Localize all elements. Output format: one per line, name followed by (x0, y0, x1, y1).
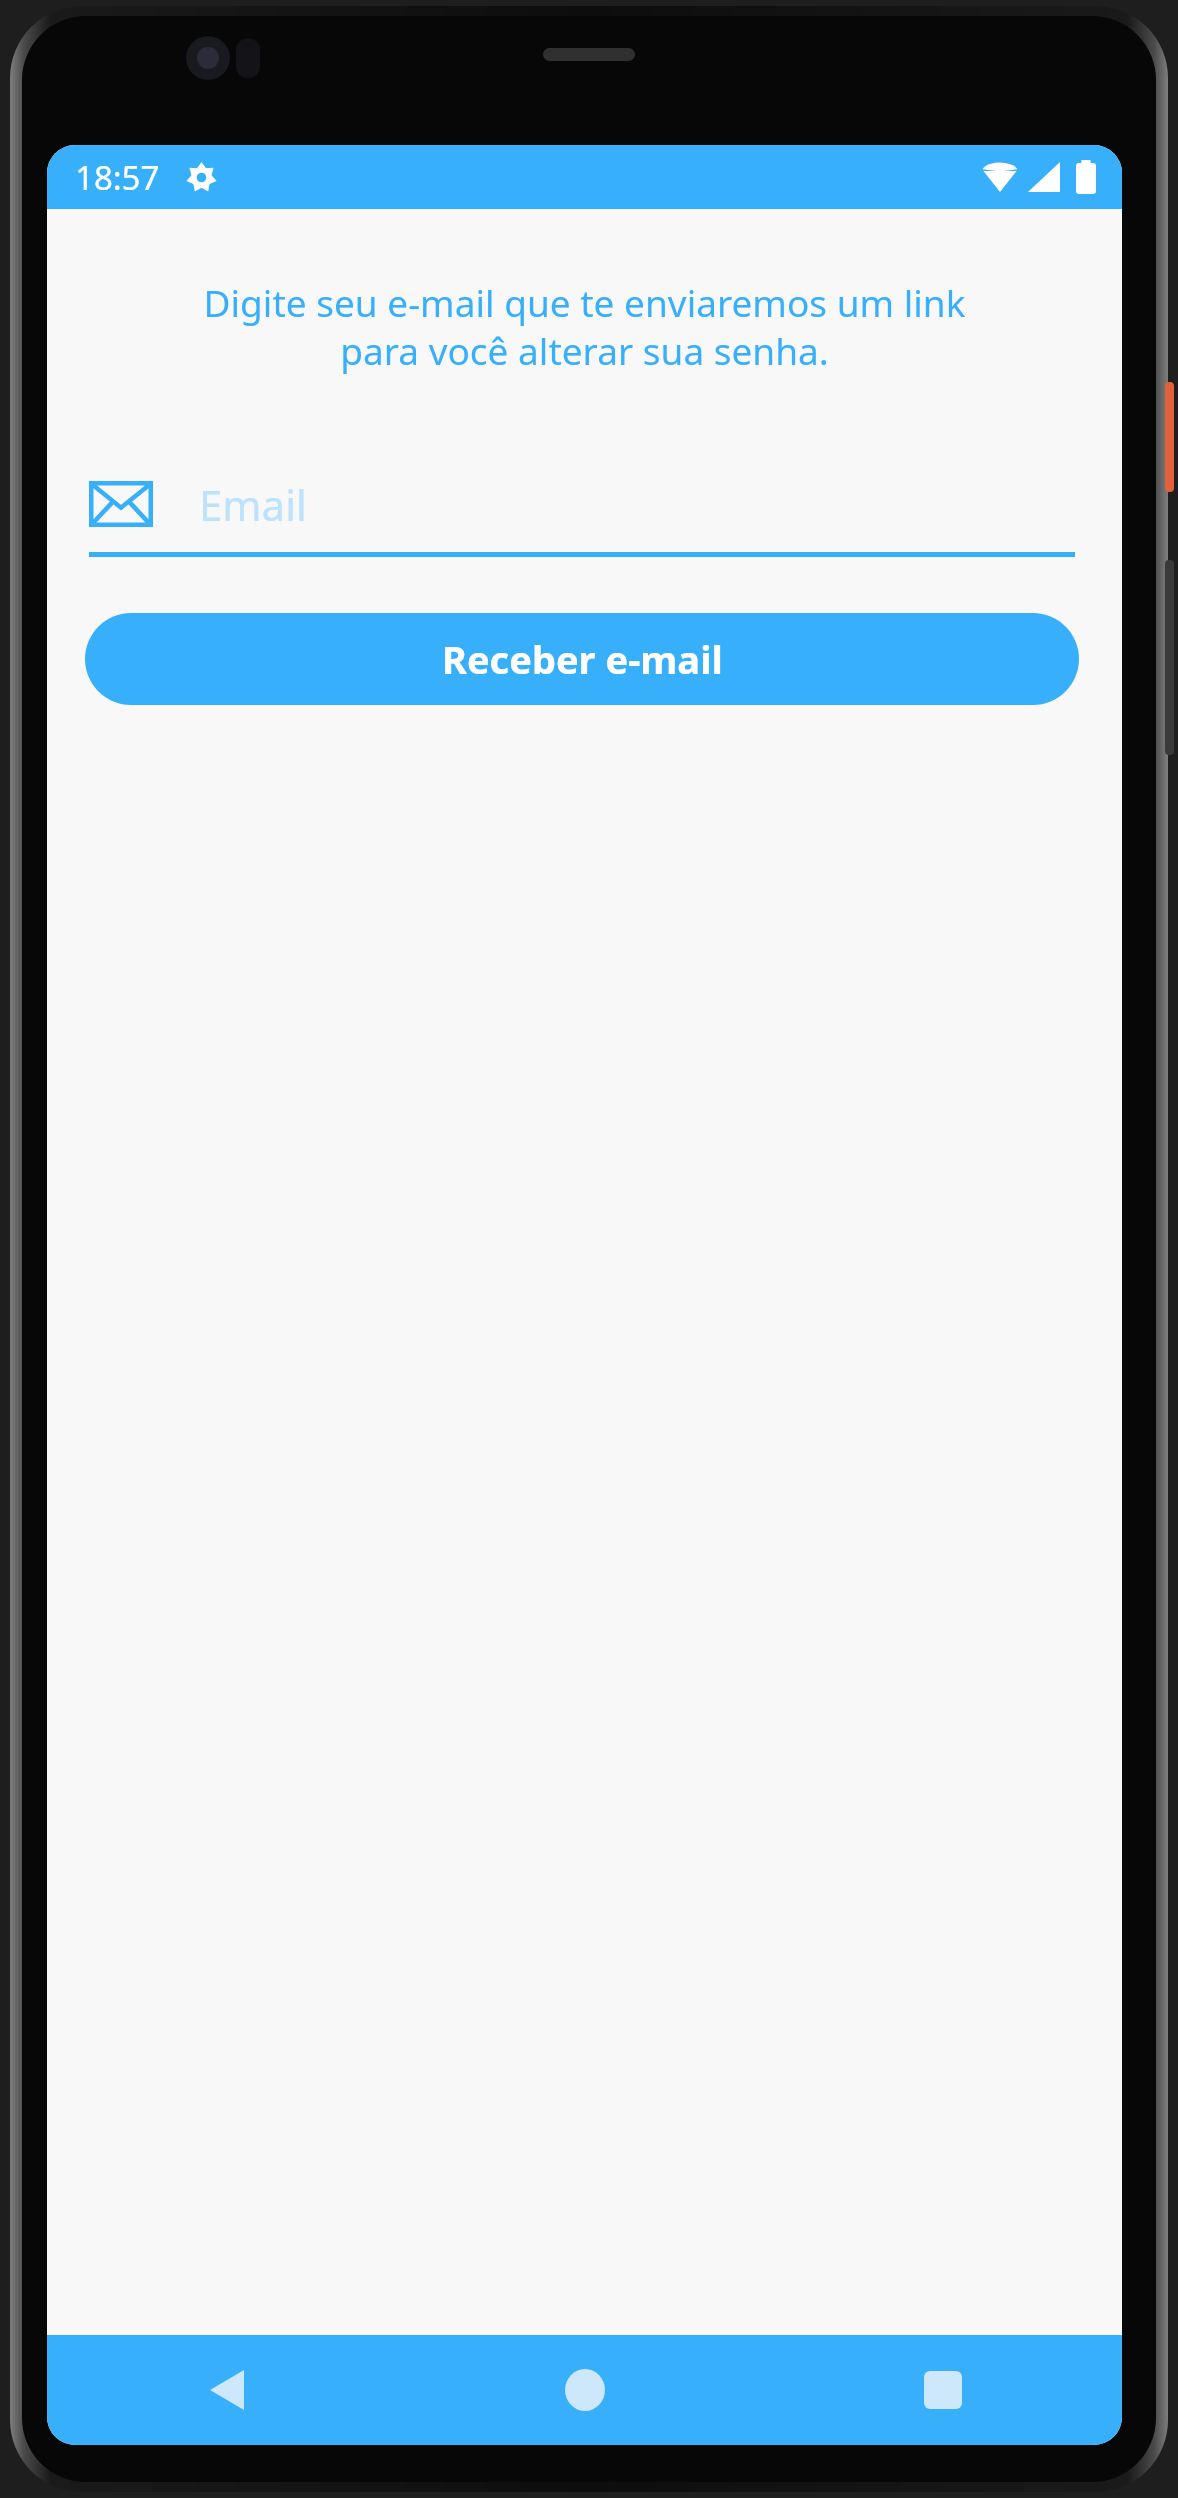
button[interactable]: Receber e-mail (85, 613, 1079, 705)
button[interactable]: Back (47, 2335, 406, 2445)
button[interactable]: Home (406, 2335, 764, 2445)
staticText: 18:57 (75, 155, 160, 200)
button[interactable]: Recent apps (764, 2335, 1122, 2445)
staticText: Receber e-mail (442, 633, 723, 685)
staticText: Digite seu e-mail que te enviaremos um l… (87, 277, 1082, 376)
staticText: Email (199, 476, 307, 533)
